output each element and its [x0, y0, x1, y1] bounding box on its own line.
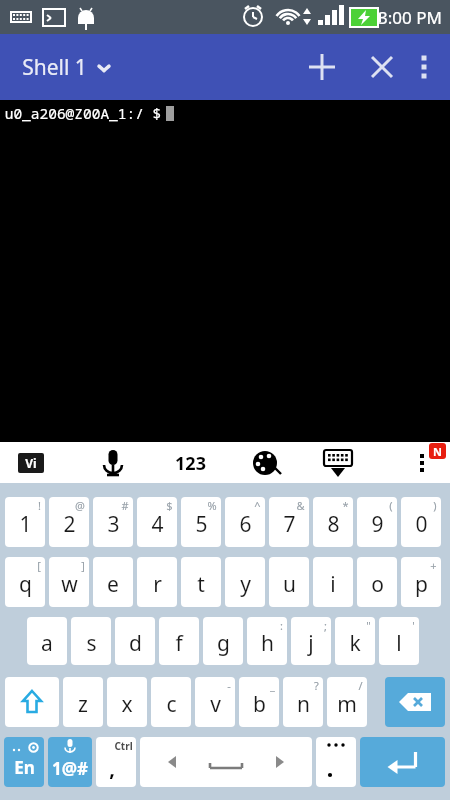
button[interactable]: 5	[181, 497, 221, 547]
staticText: g	[217, 629, 230, 658]
staticText: w	[61, 570, 78, 599]
button[interactable]: 1	[5, 497, 45, 547]
button[interactable]: 3	[93, 497, 133, 547]
button[interactable]: q	[5, 557, 45, 607]
staticText: &	[296, 498, 305, 513]
button[interactable]: 123	[165, 443, 215, 483]
staticText: 1	[19, 510, 32, 539]
button[interactable]: Shift	[5, 677, 59, 727]
button[interactable]	[316, 737, 356, 787]
button[interactable]: x	[107, 677, 147, 727]
button[interactable]: v	[195, 677, 235, 727]
staticText: Vi	[25, 455, 37, 471]
staticText: 8	[327, 510, 340, 539]
staticText: :	[280, 618, 283, 633]
staticText: p	[415, 570, 428, 599]
staticText: +	[430, 558, 437, 573]
button[interactable]: More options	[400, 43, 448, 91]
button[interactable]: Enter	[360, 737, 445, 787]
staticText: N	[433, 444, 442, 459]
button[interactable]: 8	[313, 497, 353, 547]
staticText: 4	[151, 510, 164, 539]
button[interactable]: e	[93, 557, 133, 607]
button[interactable]: f	[159, 617, 199, 665]
button[interactable]: 4	[137, 497, 177, 547]
button[interactable]: g	[203, 617, 243, 665]
staticText: j	[308, 629, 314, 658]
staticText: 2	[63, 510, 76, 539]
button[interactable]: 9	[357, 497, 397, 547]
button[interactable]: New session	[298, 43, 346, 91]
button[interactable]: p	[401, 557, 441, 607]
button[interactable]: l	[379, 617, 419, 665]
staticText: k	[349, 629, 361, 658]
staticText: '	[412, 618, 415, 633]
staticText: n	[297, 690, 310, 719]
button[interactable]: En	[4, 737, 44, 787]
button[interactable]: a	[27, 617, 67, 665]
button[interactable]: 2	[49, 497, 89, 547]
button[interactable]: h	[247, 617, 287, 665]
staticText: )	[433, 498, 437, 513]
staticText: *	[342, 498, 349, 513]
button[interactable]: 1@#	[48, 737, 92, 787]
staticText: %	[207, 498, 217, 513]
staticText: u0_a206@Z00A_1:/ $	[0, 103, 166, 123]
button[interactable]: t	[181, 557, 221, 607]
button[interactable]: Ctrl	[96, 737, 136, 787]
button[interactable]: c	[151, 677, 191, 727]
staticText: (	[389, 498, 393, 513]
staticText: @	[75, 498, 85, 513]
staticText: h	[261, 629, 274, 658]
staticText: r	[153, 570, 162, 599]
button[interactable]: Vi mode	[12, 444, 50, 482]
staticText: 3	[107, 510, 120, 539]
button[interactable]: j	[291, 617, 331, 665]
button[interactable]: k	[335, 617, 375, 665]
staticText: 9	[371, 510, 384, 539]
button[interactable]: s	[71, 617, 111, 665]
button[interactable]: 0	[401, 497, 441, 547]
staticText: 3:00 PM	[378, 6, 442, 29]
button[interactable]: m	[327, 677, 367, 727]
button[interactable]: More	[402, 443, 442, 483]
button[interactable]: Backspace	[385, 677, 445, 727]
button[interactable]: d	[115, 617, 155, 665]
staticText: Ctrl	[114, 739, 133, 753]
staticText: "	[366, 618, 371, 633]
staticText: c	[166, 690, 177, 719]
staticText: 0	[415, 510, 428, 539]
staticText: $	[166, 498, 173, 513]
button[interactable]: o	[357, 557, 397, 607]
button[interactable]: y	[225, 557, 265, 607]
staticText: 6	[239, 510, 252, 539]
button[interactable]: Hide keyboard	[318, 443, 358, 483]
staticText: o	[371, 570, 384, 599]
button[interactable]: b	[239, 677, 279, 727]
staticText: l	[396, 629, 402, 658]
staticText: d	[129, 629, 142, 658]
button[interactable]: Theme	[246, 443, 286, 483]
button[interactable]: Space	[140, 737, 312, 787]
button[interactable]: u	[269, 557, 309, 607]
button[interactable]: Close session	[358, 43, 406, 91]
staticText: v	[210, 690, 221, 719]
staticText: ?	[314, 678, 319, 693]
button[interactable]: i	[313, 557, 353, 607]
button[interactable]: Shell 1	[18, 49, 116, 86]
button[interactable]: n	[283, 677, 323, 727]
button[interactable]: 7	[269, 497, 309, 547]
staticText: Shell 1	[22, 53, 87, 82]
staticText: ,	[109, 755, 115, 782]
button[interactable]: z	[63, 677, 103, 727]
button[interactable]: Voice input	[93, 443, 133, 483]
staticText: a	[41, 629, 53, 658]
button[interactable]: r	[137, 557, 177, 607]
button[interactable]: 6	[225, 497, 265, 547]
staticText: q	[19, 570, 32, 599]
staticText: !	[38, 498, 41, 513]
staticText: ^	[254, 498, 261, 513]
button[interactable]: w	[49, 557, 89, 607]
staticText: y	[240, 570, 251, 599]
staticText: _	[270, 678, 275, 693]
